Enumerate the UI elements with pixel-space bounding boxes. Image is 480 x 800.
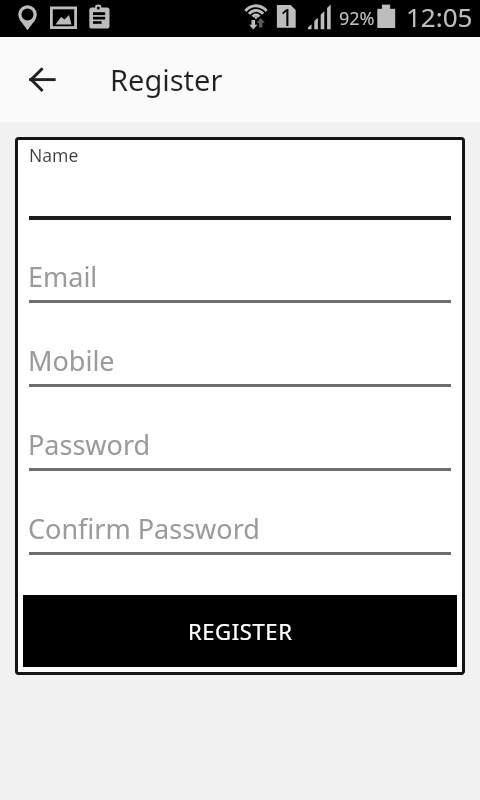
staticText: Password bbox=[28, 426, 151, 463]
button[interactable]: Password bbox=[29, 420, 451, 476]
staticText: Register bbox=[110, 60, 223, 99]
button[interactable]: Mobile bbox=[29, 336, 451, 392]
staticText: Confirm Password bbox=[28, 510, 260, 547]
button[interactable]: Back bbox=[20, 57, 64, 101]
staticText: REGISTER bbox=[188, 616, 293, 646]
staticText: 1 bbox=[280, 1, 294, 32]
button[interactable]: Name bbox=[29, 142, 451, 220]
staticText: Name bbox=[29, 143, 79, 167]
button[interactable]: Email bbox=[29, 252, 451, 308]
staticText: Mobile bbox=[28, 342, 115, 379]
button[interactable]: Confirm Password bbox=[29, 504, 451, 560]
staticText: Email bbox=[28, 258, 98, 295]
staticText: 12:05 bbox=[406, 0, 473, 34]
button[interactable]: REGISTER bbox=[23, 595, 457, 667]
staticText: 92% bbox=[339, 6, 375, 31]
